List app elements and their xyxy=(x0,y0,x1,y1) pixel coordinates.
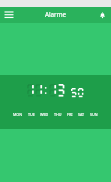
staticText: TUE xyxy=(28,112,35,117)
staticText: MON xyxy=(13,112,23,117)
button[interactable]: Menu xyxy=(0,7,18,23)
staticText: FRI xyxy=(67,112,73,117)
staticText: THU xyxy=(54,112,62,117)
staticText: WED xyxy=(40,112,49,117)
staticText: SAT xyxy=(78,112,85,117)
staticText: Alarme xyxy=(18,10,93,19)
staticText: SUN xyxy=(90,112,98,117)
button[interactable]: Alarm xyxy=(93,7,111,23)
